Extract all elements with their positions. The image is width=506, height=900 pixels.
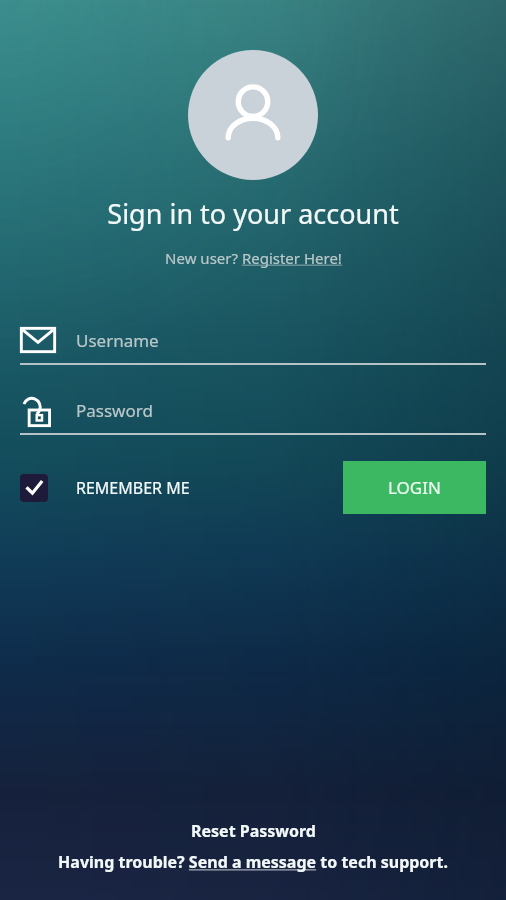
- staticText: Reset Password: [191, 820, 316, 842]
- button[interactable]: LOGIN: [343, 461, 486, 514]
- button[interactable]: REMEMBER ME: [20, 474, 190, 502]
- button[interactable]: Reset Password: [191, 820, 316, 842]
- button[interactable]: Having trouble? Send a message to tech s…: [58, 851, 448, 873]
- button[interactable]: Email: [20, 317, 486, 363]
- other: Profile avatar: [188, 50, 318, 180]
- other: Password: [20, 392, 56, 428]
- staticText: Having trouble? Send a message to tech s…: [58, 851, 448, 873]
- staticText: Sign in to your account: [107, 195, 399, 232]
- button[interactable]: New user? Register Here!: [165, 248, 342, 268]
- staticText: REMEMBER ME: [76, 477, 190, 499]
- staticText: Username: [76, 329, 159, 352]
- staticText: Password: [76, 399, 153, 422]
- other: Email: [20, 322, 56, 358]
- button[interactable]: Password: [20, 387, 486, 433]
- staticText: New user? Register Here!: [165, 248, 342, 268]
- staticText: LOGIN: [388, 476, 441, 499]
